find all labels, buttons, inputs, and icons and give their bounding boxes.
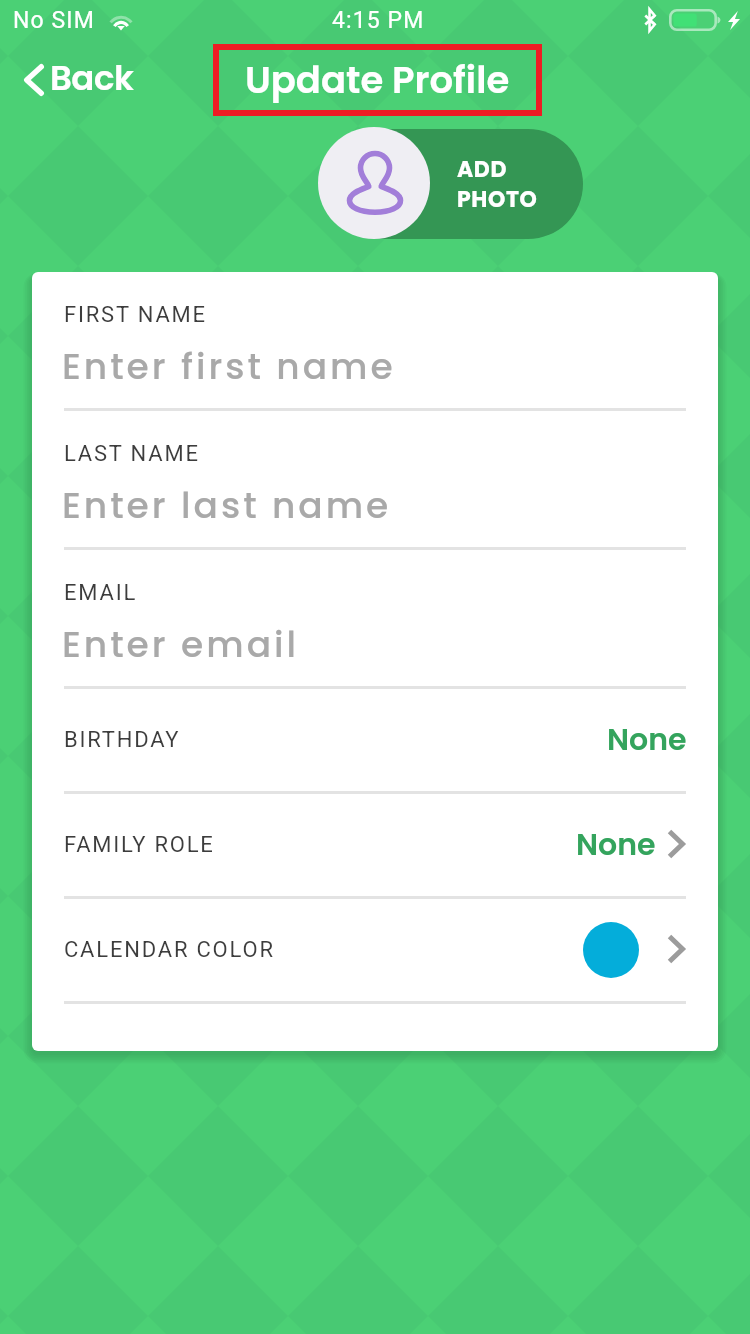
button[interactable]: FIRST NAME	[32, 272, 718, 411]
staticText: No SIM	[13, 7, 95, 34]
button[interactable]: Back	[12, 51, 150, 109]
staticText: None	[607, 719, 687, 761]
button[interactable]: Update Profile	[213, 44, 542, 116]
staticText: 4:15 PM	[332, 7, 425, 34]
staticText: BIRTHDAY	[64, 727, 181, 753]
staticText: FIRST NAME	[64, 302, 207, 328]
staticText: Update Profile	[245, 54, 510, 106]
staticText: Back	[50, 54, 134, 102]
button[interactable]: EMAIL	[32, 550, 718, 689]
staticText: CALENDAR COLOR	[64, 937, 275, 963]
button[interactable]: Profile photo	[318, 127, 430, 239]
button[interactable]: LAST NAME	[32, 411, 718, 550]
staticText: EMAIL	[64, 580, 138, 606]
staticText: None	[576, 824, 656, 866]
button[interactable]: Add photo	[330, 129, 583, 239]
staticText: FAMILY ROLE	[64, 832, 215, 858]
button[interactable]: BIRTHDAY	[32, 689, 718, 794]
staticText: LAST NAME	[64, 441, 200, 467]
button[interactable]: FAMILY ROLE	[32, 794, 718, 899]
staticText: Enter first name	[62, 341, 396, 391]
button[interactable]: CALENDAR COLOR	[32, 899, 718, 1004]
staticText: Enter last name	[62, 480, 392, 530]
staticText: ADD PHOTO	[457, 154, 538, 214]
staticText: Enter email	[62, 619, 300, 669]
